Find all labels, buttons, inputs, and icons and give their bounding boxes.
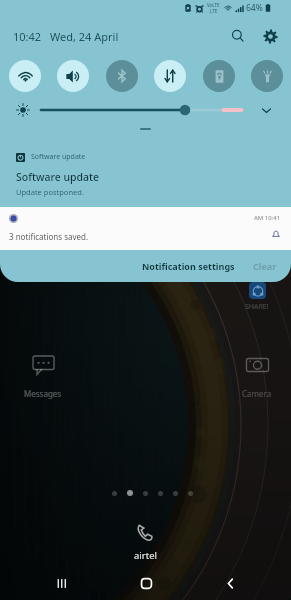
other: Expand [261, 105, 272, 116]
button[interactable]: Back [206, 567, 254, 600]
staticText: 10:42 [13, 29, 42, 44]
staticText: Update postponed. [16, 187, 84, 197]
other: Search [231, 29, 245, 43]
button[interactable]: Wi-Fi [9, 60, 41, 92]
button[interactable]: 3 notifications saved. [0, 207, 291, 250]
staticText: Software update [16, 170, 100, 184]
staticText: Clear [253, 260, 277, 272]
staticText: VoLTE [207, 2, 220, 8]
button[interactable]: Camera [242, 352, 272, 399]
other: Messages [31, 352, 56, 377]
button[interactable]: Software update [16, 152, 275, 197]
button[interactable]: Auto rotate [203, 60, 235, 92]
staticText: Wed, 24 April [50, 29, 119, 44]
staticText: 64% [246, 2, 263, 14]
button[interactable]: Bluetooth [106, 60, 138, 92]
button[interactable]: Clear [253, 260, 277, 272]
button[interactable]: Expand [257, 101, 275, 119]
button[interactable]: Share [245, 282, 269, 312]
button[interactable]: Sound [57, 60, 89, 92]
staticText: Notification settings [142, 260, 235, 272]
other: Home [140, 577, 153, 590]
staticText: Software update [31, 152, 86, 162]
other: Settings [263, 29, 278, 44]
button[interactable]: Recents [37, 567, 85, 600]
button[interactable]: Flashlight [251, 60, 283, 92]
other: Camera [245, 352, 270, 377]
button[interactable]: Home [122, 567, 170, 600]
staticText: SHARE! [245, 302, 269, 312]
button[interactable]: Notification settings [142, 260, 235, 272]
staticText: airtel [134, 549, 157, 562]
button[interactable]: Search [225, 23, 251, 49]
other: Recents [55, 577, 68, 590]
other: Share [249, 282, 266, 299]
button[interactable]: Messages [24, 352, 62, 399]
staticText: Messages [24, 388, 62, 399]
staticText: Camera [242, 388, 272, 399]
button[interactable]: Settings [257, 23, 283, 49]
other: Back [224, 577, 237, 590]
other: Phone [135, 522, 156, 543]
button[interactable]: Phone [134, 522, 157, 562]
staticText: 3 notifications saved. [9, 231, 89, 242]
button[interactable]: Mobile data [154, 60, 186, 92]
staticText: LTE [210, 8, 218, 14]
staticText: AM 10:41 [254, 214, 281, 222]
